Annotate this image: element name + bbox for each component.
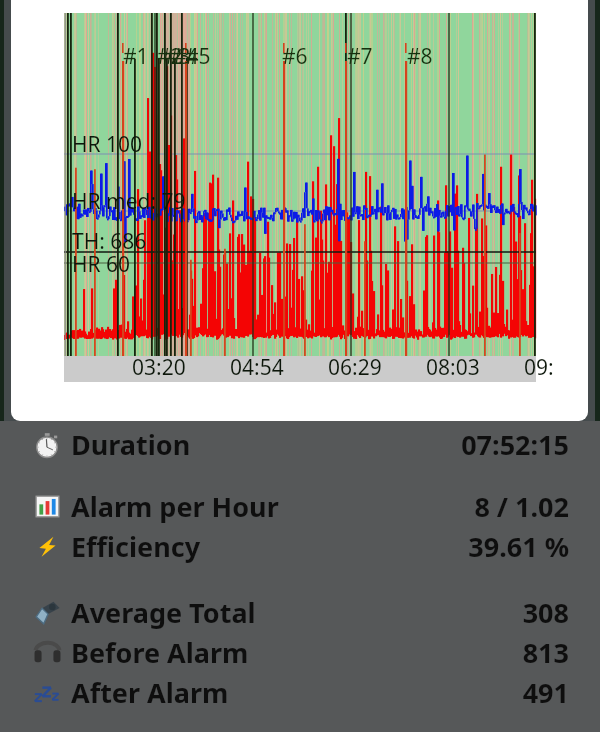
staticText: #3 [165, 42, 191, 71]
button[interactable]: Efficiency [0, 526, 600, 566]
staticText: 06:29 [328, 353, 382, 382]
staticText: #5 [185, 42, 211, 71]
staticText: HR 100 [72, 130, 143, 159]
staticText: #6 [282, 42, 308, 71]
button[interactable]: Alarm per Hour [0, 486, 600, 526]
staticText: Efficiency [71, 528, 201, 565]
staticText: 308 [522, 594, 569, 631]
staticText: 03:20 [132, 353, 186, 382]
staticText: #7 [347, 42, 373, 71]
staticText: #8 [407, 42, 433, 71]
staticText: #2 [157, 42, 183, 71]
staticText: Duration [71, 426, 191, 463]
staticText: TH: 686 [72, 227, 147, 256]
staticText: #4 [173, 42, 199, 71]
staticText: #1 [123, 42, 149, 71]
button[interactable]: Duration [0, 424, 600, 464]
staticText: 07:52:15 [461, 426, 569, 463]
staticText: 813 [522, 634, 569, 671]
staticText: 8 / 1.02 [474, 488, 569, 525]
staticText: 09: [524, 353, 554, 382]
staticText: 04:54 [230, 353, 284, 382]
button[interactable]: Before Alarm [0, 632, 600, 672]
button[interactable]: After Alarm [0, 672, 600, 712]
staticText: 39.61 % [468, 528, 569, 565]
staticText: HR med: 79 [72, 187, 186, 216]
staticText: Alarm per Hour [71, 488, 279, 525]
staticText: Before Alarm [71, 634, 249, 671]
staticText: Average Total [71, 594, 256, 631]
staticText: 491 [522, 674, 569, 711]
staticText: After Alarm [71, 674, 229, 711]
staticText: HR 60 [72, 250, 131, 279]
button[interactable]: Average Total [0, 592, 600, 632]
staticText: 08:03 [426, 353, 480, 382]
